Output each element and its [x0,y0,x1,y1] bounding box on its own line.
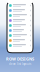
button[interactable] [7,33,32,38]
button[interactable] [7,28,32,33]
button[interactable] [7,18,32,23]
button[interactable] [7,8,32,13]
staticText: ROW DESIGNS [6,56,34,62]
button[interactable] [7,23,32,28]
button[interactable] [7,13,32,18]
button[interactable] [7,38,32,43]
button[interactable] [7,43,32,48]
staticText: clean list layouts [9,62,31,66]
button[interactable] [7,3,32,8]
